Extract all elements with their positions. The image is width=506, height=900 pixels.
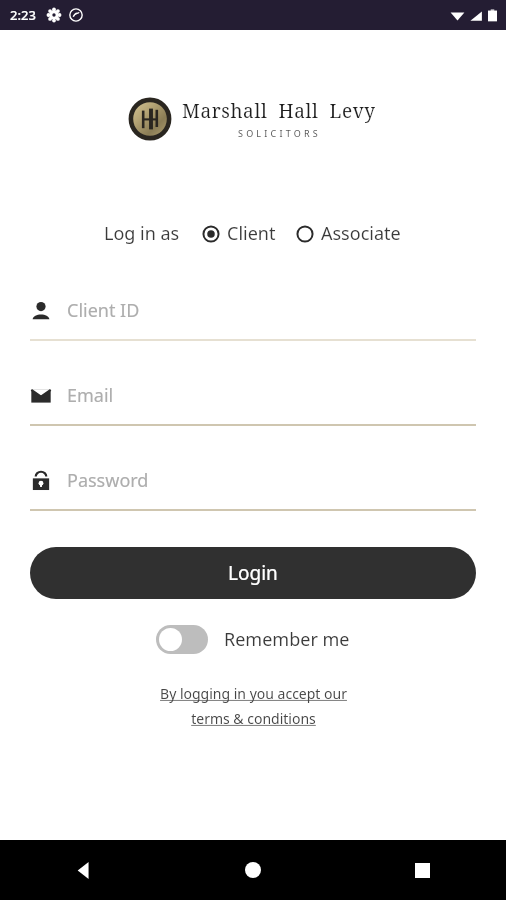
staticText: 2:23: [10, 6, 36, 24]
staticText: Log in as: [104, 221, 180, 246]
staticText: terms & conditions: [191, 709, 316, 728]
staticText: Client ID: [67, 298, 140, 323]
staticText: Remember me: [224, 627, 350, 652]
staticText: Marshall Hall Levy: [182, 98, 376, 124]
button[interactable]: Recent apps: [398, 846, 446, 894]
button[interactable]: Home: [229, 846, 277, 894]
button[interactable]: Email: [30, 383, 476, 426]
button[interactable]: Back: [60, 846, 108, 894]
staticText: SOLICITORS: [238, 127, 321, 139]
staticText: Password: [67, 468, 149, 493]
button[interactable]: Client: [200, 217, 278, 250]
staticText: Client: [227, 221, 276, 246]
button[interactable]: Remember me: [152, 621, 354, 658]
button[interactable]: Login: [30, 547, 476, 599]
staticText: By logging in you accept our: [160, 684, 347, 703]
button[interactable]: Password: [30, 468, 476, 511]
button[interactable]: Client ID: [30, 298, 476, 341]
button[interactable]: By logging in you accept our: [152, 682, 355, 730]
button[interactable]: Associate: [294, 217, 403, 250]
staticText: Login: [228, 560, 278, 586]
staticText: Email: [67, 383, 114, 408]
staticText: Associate: [321, 221, 401, 246]
